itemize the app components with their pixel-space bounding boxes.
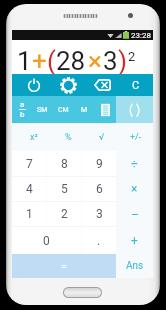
staticText: b	[20, 110, 25, 119]
button[interactable]: CM	[53, 96, 74, 123]
button[interactable]: 9	[82, 151, 116, 176]
staticText: a	[20, 100, 25, 109]
staticText: +/-	[130, 132, 142, 143]
button[interactable]: Backspace	[85, 74, 119, 96]
button[interactable]: –	[116, 202, 153, 228]
staticText: 1	[26, 207, 33, 221]
button[interactable]: Fraction	[12, 96, 32, 123]
button[interactable]: 1	[12, 202, 46, 226]
staticText: )	[118, 46, 128, 76]
button[interactable]: 4	[12, 177, 46, 201]
button[interactable]: 5	[47, 177, 81, 201]
button[interactable]: 7	[12, 151, 46, 176]
staticText: 23:28	[131, 31, 151, 40]
staticText: +	[32, 46, 47, 76]
button[interactable]: √	[85, 123, 119, 151]
button[interactable]: ×	[116, 176, 153, 202]
staticText: .	[97, 234, 101, 248]
button[interactable]: SM	[32, 96, 53, 123]
staticText: 0	[43, 234, 50, 248]
button[interactable]: .	[82, 227, 116, 254]
staticText: 4	[26, 182, 33, 196]
staticText: 2	[61, 207, 68, 221]
button[interactable]: x²	[16, 123, 51, 151]
staticText: 2	[128, 49, 136, 64]
button[interactable]: Settings	[51, 74, 85, 96]
button[interactable]: 3	[82, 202, 116, 226]
button[interactable]: 2	[47, 202, 81, 226]
staticText: √	[99, 132, 105, 143]
staticText: CM	[58, 106, 69, 114]
staticText: 9	[96, 157, 103, 171]
button[interactable]: M	[74, 96, 95, 123]
staticText: 3	[96, 207, 103, 221]
staticText: Ans	[126, 260, 144, 272]
staticText: ×	[88, 46, 102, 76]
button[interactable]: +/-	[119, 123, 153, 151]
staticText: SM	[37, 106, 48, 114]
button[interactable]: %	[51, 123, 85, 151]
staticText: x²	[30, 132, 38, 143]
staticText: ÷	[131, 157, 138, 171]
staticText: 28	[56, 46, 86, 76]
button[interactable]: +	[116, 228, 153, 254]
button[interactable]: =	[12, 254, 116, 278]
button[interactable]: Power	[16, 74, 51, 96]
staticText: (	[47, 46, 56, 76]
staticText: 3	[103, 46, 118, 76]
staticText: –	[131, 208, 139, 222]
staticText: 1	[17, 46, 32, 76]
button[interactable]: ÷	[116, 151, 153, 176]
staticText: +	[131, 234, 138, 248]
button[interactable]: 6	[82, 177, 116, 201]
staticText: 7	[26, 157, 33, 171]
button[interactable]: C	[119, 74, 153, 96]
button[interactable]: ( )	[116, 96, 153, 123]
button[interactable]: 0	[12, 227, 81, 254]
staticText: 8	[61, 157, 68, 171]
staticText: 6	[96, 182, 103, 196]
staticText: =	[61, 260, 68, 273]
button[interactable]: Ans	[116, 254, 153, 278]
staticText: ×	[131, 182, 138, 196]
staticText: M	[81, 106, 88, 114]
staticText: ( )	[129, 103, 141, 117]
button[interactable]: 8	[47, 151, 81, 176]
staticText: %	[65, 132, 72, 143]
staticText: 5	[61, 182, 68, 196]
staticText: C	[132, 79, 140, 92]
button[interactable]: History	[95, 96, 116, 123]
